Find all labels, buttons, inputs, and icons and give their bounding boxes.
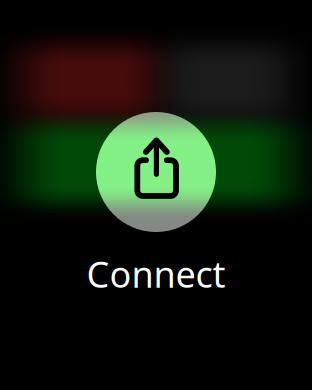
button[interactable]: Connect [96, 112, 216, 232]
staticText: Connect [86, 250, 225, 298]
